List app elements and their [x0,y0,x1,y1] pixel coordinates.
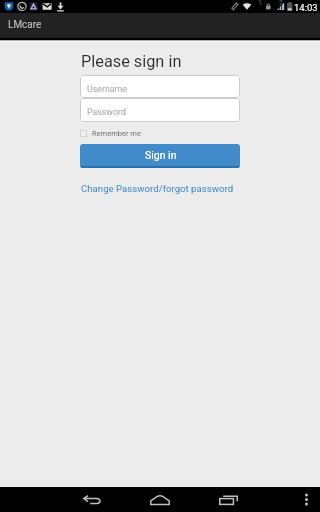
staticText: Username [87,84,127,94]
staticText: 14:03 [294,2,318,13]
button[interactable]: Password [80,98,240,122]
staticText: Remember me [92,129,141,138]
button[interactable]: Sign in [80,144,240,168]
staticText: LMcare [8,19,42,31]
staticText: 2 [279,0,283,7]
staticText: Password [87,107,126,117]
staticText: 1 [258,0,262,7]
button[interactable]: Change Password/forgot password [81,183,234,194]
button[interactable]: More options [293,487,320,512]
staticText: Sign in [145,149,177,161]
button[interactable]: Back [58,487,126,512]
button[interactable]: Username [80,75,240,98]
button[interactable]: Remember me [80,129,141,138]
staticText: Please sign in [81,52,182,71]
button[interactable]: Home [126,487,194,512]
button[interactable]: Recent apps [194,487,262,512]
